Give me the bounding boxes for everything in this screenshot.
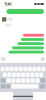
staticText: 9:41 (4, 1, 11, 7)
